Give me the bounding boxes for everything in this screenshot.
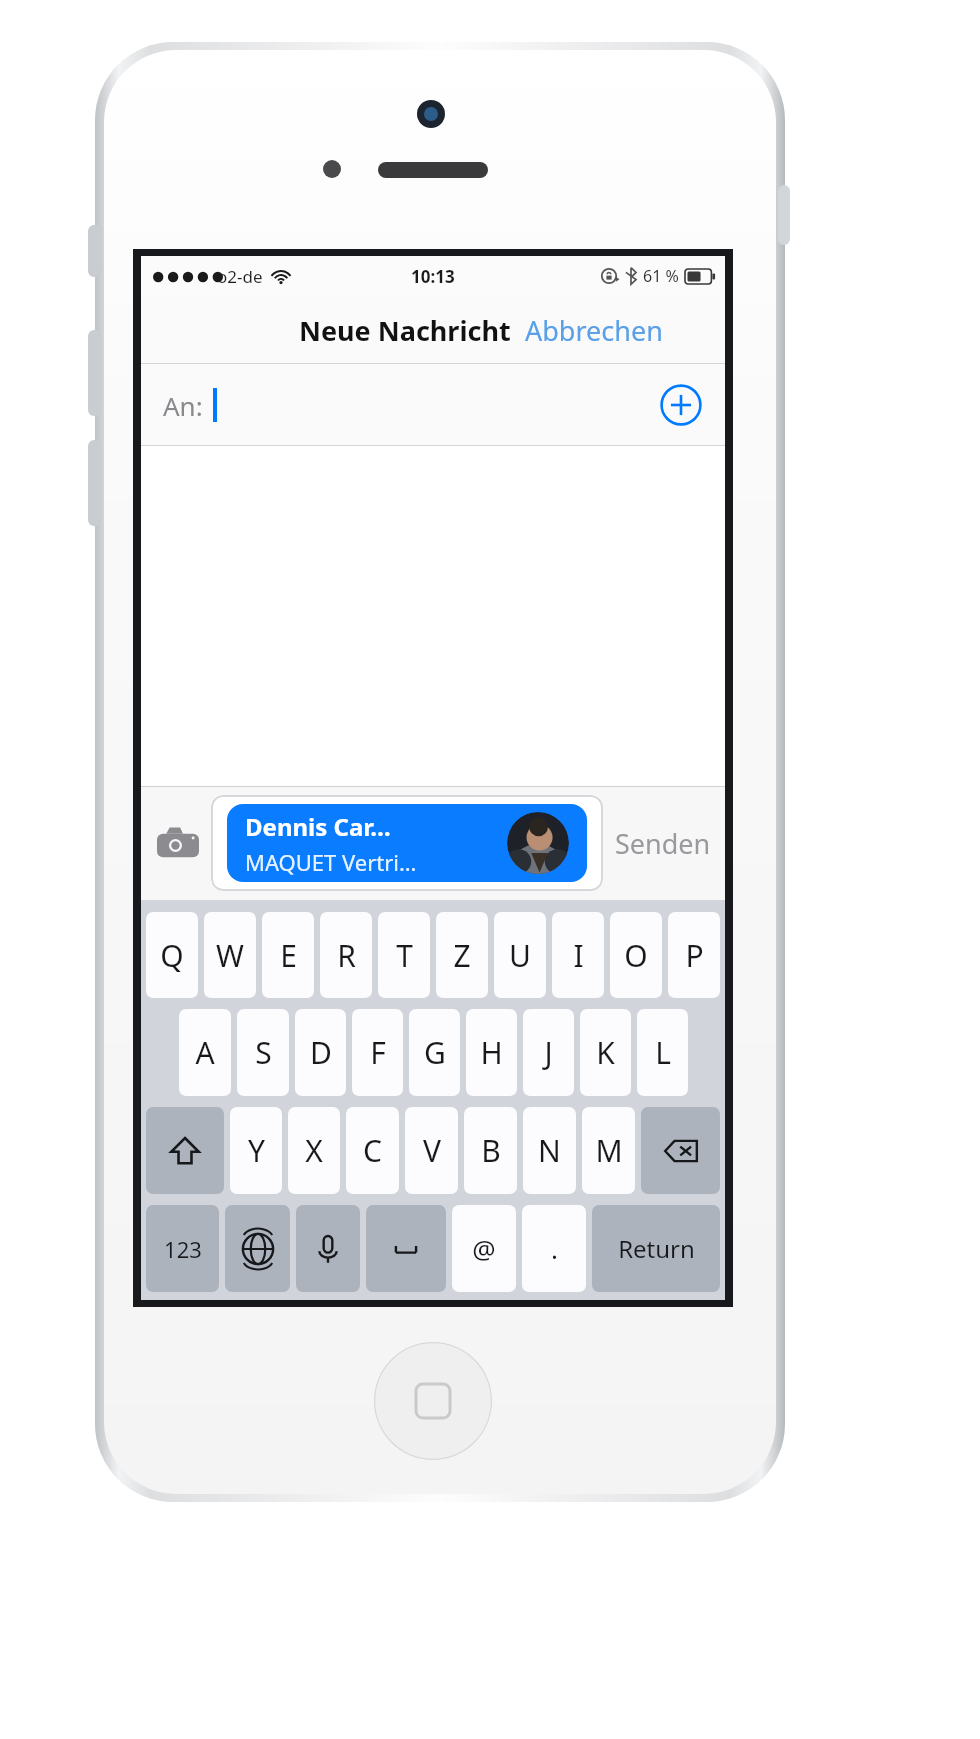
staticText: 10:13 <box>411 265 455 288</box>
staticText: I <box>573 935 584 976</box>
staticText: B <box>481 1130 501 1171</box>
staticText: . <box>551 1231 558 1266</box>
staticText: W <box>216 935 244 976</box>
button[interactable]: K <box>580 1009 631 1096</box>
button[interactable]: C <box>346 1107 399 1194</box>
staticText: E <box>280 935 297 976</box>
staticText: Return <box>618 1232 695 1265</box>
staticText: U <box>509 935 531 976</box>
staticText: L <box>655 1032 671 1073</box>
staticText: An: <box>163 388 203 423</box>
button[interactable]: Return <box>592 1205 720 1292</box>
staticText: Q <box>160 935 184 976</box>
staticText: X <box>305 1130 323 1171</box>
button[interactable]: A <box>179 1009 231 1096</box>
button[interactable]: E <box>262 912 314 998</box>
staticText: C <box>363 1130 382 1171</box>
button[interactable]: P <box>668 912 720 998</box>
button[interactable]: H <box>466 1009 517 1096</box>
button[interactable]: J <box>523 1009 574 1096</box>
button[interactable]: Kontakt hinzufügen <box>659 383 703 427</box>
staticText: R <box>337 935 356 976</box>
staticText: T <box>396 935 413 976</box>
staticText: F <box>370 1032 386 1073</box>
button[interactable]: R <box>320 912 372 998</box>
staticText: Abbrechen <box>525 312 663 349</box>
staticText: K <box>596 1032 615 1073</box>
button[interactable]: T <box>378 912 430 998</box>
staticText: H <box>480 1032 503 1073</box>
button[interactable]: . <box>522 1205 586 1292</box>
staticText: O <box>624 935 648 976</box>
staticText: Neue Nachricht <box>299 312 511 349</box>
button[interactable]: Z <box>436 912 488 998</box>
staticText: Dennis Car… <box>245 810 391 843</box>
button[interactable]: L <box>637 1009 688 1096</box>
button[interactable]: Kamera <box>151 816 205 870</box>
button[interactable]: Löschen <box>641 1107 720 1194</box>
button[interactable]: V <box>405 1107 458 1194</box>
staticText: 61 % <box>643 265 679 287</box>
button[interactable]: M <box>582 1107 635 1194</box>
button[interactable]: I <box>552 912 604 998</box>
staticText: D <box>310 1032 332 1073</box>
staticText: @ <box>472 1231 496 1266</box>
staticText: M <box>595 1130 623 1171</box>
button[interactable]: X <box>288 1107 340 1194</box>
staticText: 123 <box>164 1234 202 1264</box>
button[interactable]: Abbrechen <box>523 306 665 355</box>
button[interactable]: B <box>464 1107 517 1194</box>
button[interactable]: G <box>409 1009 460 1096</box>
staticText: Z <box>453 935 471 976</box>
button[interactable]: N <box>523 1107 576 1194</box>
button[interactable]: Sprache <box>225 1205 290 1292</box>
button[interactable]: Leerzeichen <box>366 1205 446 1292</box>
staticText: Senden <box>615 825 711 862</box>
button[interactable]: U <box>494 912 546 998</box>
button[interactable]: D <box>295 1009 346 1096</box>
staticText: V <box>423 1130 441 1171</box>
button[interactable]: W <box>204 912 256 998</box>
button[interactable]: Home <box>374 1342 492 1460</box>
button[interactable]: S <box>237 1009 289 1096</box>
button[interactable]: @ <box>452 1205 516 1292</box>
button[interactable]: Umschalten <box>146 1107 224 1194</box>
button[interactable]: Dennis Car… <box>211 795 603 891</box>
button[interactable]: Senden <box>611 817 715 870</box>
button[interactable]: Diktieren <box>296 1205 360 1292</box>
staticText: o2-de <box>217 265 263 288</box>
staticText: J <box>544 1032 553 1073</box>
button[interactable]: An: <box>141 364 725 446</box>
staticText: Y <box>248 1130 265 1171</box>
staticText: A <box>195 1032 215 1073</box>
staticText: MAQUET Vertri… <box>245 847 417 877</box>
button[interactable]: Y <box>230 1107 282 1194</box>
button[interactable]: O <box>610 912 662 998</box>
button[interactable]: F <box>352 1009 403 1096</box>
button[interactable]: 123 <box>146 1205 219 1292</box>
staticText: P <box>685 935 704 976</box>
button[interactable]: Dennis Car… <box>227 804 587 882</box>
button[interactable]: Q <box>146 912 198 998</box>
staticText: S <box>255 1032 272 1073</box>
staticText: N <box>538 1130 561 1171</box>
staticText: G <box>424 1032 446 1073</box>
